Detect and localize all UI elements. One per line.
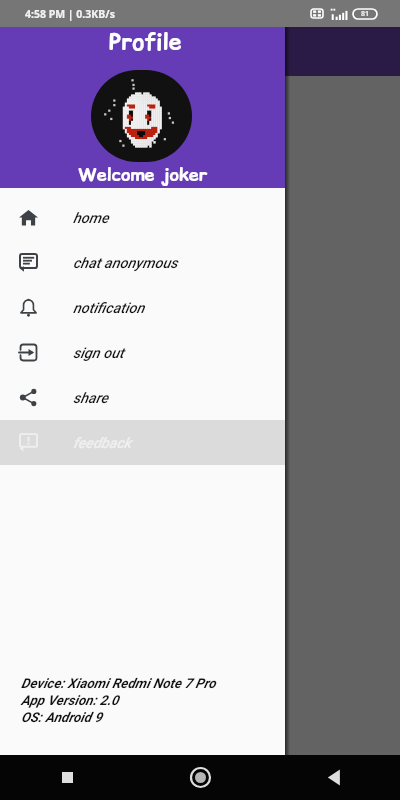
button[interactable]: Home [134, 755, 267, 800]
button[interactable]: home [0, 195, 285, 240]
staticText: OS: Android 9 [21, 709, 103, 726]
button[interactable]: chat anonymous [0, 240, 285, 285]
staticText: home [73, 210, 109, 227]
button[interactable]: feedback [0, 420, 285, 465]
staticText: Profile [109, 26, 182, 58]
staticText: Welcome joker [78, 162, 208, 187]
button[interactable]: notification [0, 285, 285, 330]
staticText: Device: Xiaomi Redmi Note 7 Pro [21, 675, 216, 692]
staticText: notification [73, 300, 145, 317]
staticText: feedback [73, 435, 132, 452]
staticText: 81 [361, 9, 370, 19]
staticText: chat anonymous [73, 255, 178, 272]
button[interactable]: sign out [0, 330, 285, 375]
staticText: share [73, 390, 109, 407]
button[interactable]: Recent apps [0, 755, 134, 800]
staticText: 4:58 PM | 0.3KB/s [25, 7, 115, 21]
staticText: App Version: 2.0 [21, 692, 119, 709]
other: Home [190, 767, 211, 788]
other: Back [327, 769, 341, 786]
button[interactable]: Back [267, 755, 400, 800]
button[interactable]: share [0, 375, 285, 420]
staticText: sign out [73, 345, 124, 362]
